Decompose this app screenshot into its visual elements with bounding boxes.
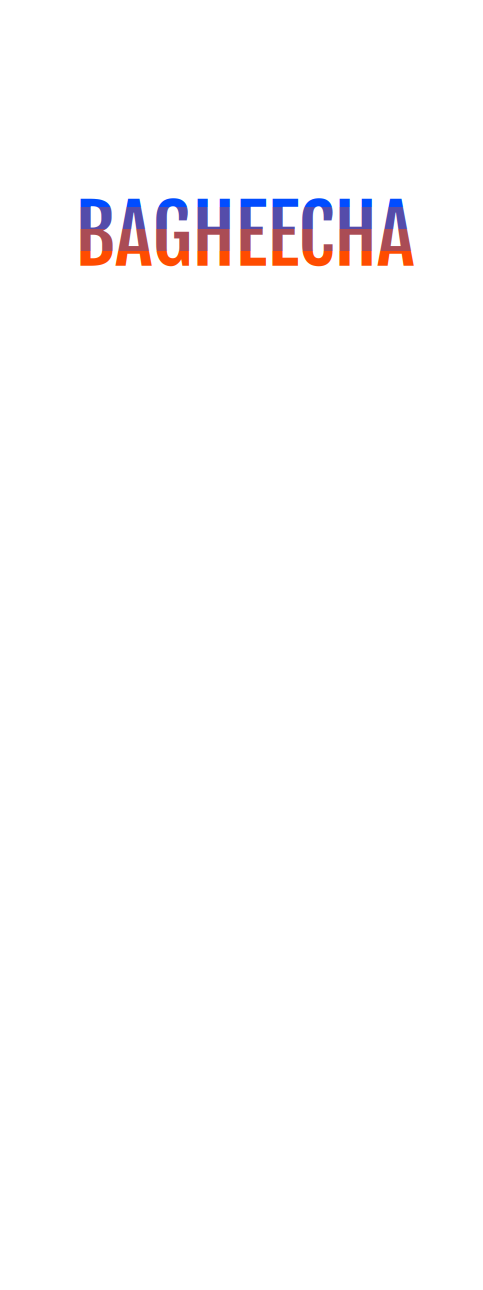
staticText: BAGHEECHA	[75, 185, 414, 285]
staticText: BAGHEECHA	[75, 185, 414, 285]
staticText: BAGHEECHA	[75, 185, 414, 285]
staticText: BAGHEECHA	[75, 185, 414, 285]
